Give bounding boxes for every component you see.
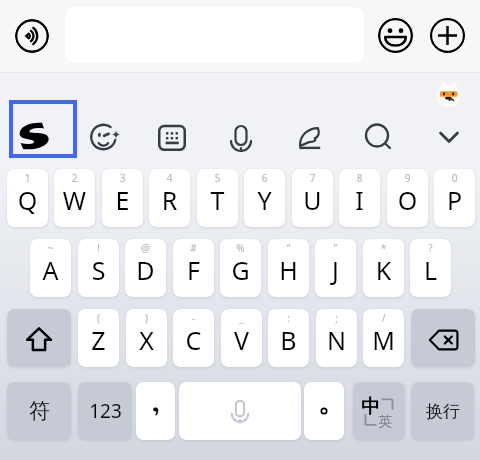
button[interactable]: Sogou (13, 104, 73, 154)
button[interactable]: ( (78, 309, 119, 367)
staticText: 中 (361, 395, 380, 419)
staticText: “ (268, 241, 309, 255)
button[interactable]: ) (126, 309, 167, 367)
staticText: Q (7, 183, 48, 217)
button[interactable]: 4 (149, 169, 190, 227)
staticText: ~ (30, 241, 71, 255)
button[interactable]: ! (78, 239, 119, 297)
button[interactable]: _ (221, 309, 262, 367)
button[interactable]: - (173, 309, 214, 367)
button[interactable]: Handwriting (287, 115, 331, 159)
button[interactable]: Chinese English toggle (353, 382, 405, 440)
button[interactable]: Shift (7, 309, 71, 367)
staticText: P (434, 183, 475, 217)
button[interactable]: 5 (197, 169, 238, 227)
button[interactable]: % (220, 239, 261, 297)
staticText: - (173, 311, 214, 325)
staticText: 123 (89, 398, 122, 424)
button[interactable]: 符 (7, 382, 71, 440)
button[interactable]: Add (430, 18, 465, 53)
staticText: V (221, 323, 262, 357)
staticText: Y (244, 183, 285, 217)
staticText: 0 (434, 171, 475, 185)
staticText: A (30, 253, 71, 287)
button[interactable]: ; (316, 309, 357, 367)
staticText: I (339, 183, 380, 217)
staticText: 符 (29, 398, 50, 424)
button[interactable]: 123 (78, 382, 132, 440)
button[interactable]: @ (125, 239, 166, 297)
staticText: @ (125, 241, 166, 255)
staticText: _ (221, 311, 262, 325)
staticText: D (125, 253, 166, 287)
button[interactable]: ” (315, 239, 356, 297)
staticText: G (220, 253, 261, 287)
staticText: ! (78, 241, 119, 255)
staticText: 6 (244, 171, 285, 185)
staticText: R (149, 183, 190, 217)
staticText: 5 (197, 171, 238, 185)
staticText: : (268, 311, 309, 325)
button[interactable]: Keyboard (150, 115, 194, 159)
staticText: S (78, 253, 119, 287)
button[interactable]: 3 (102, 169, 143, 227)
staticText: 9 (387, 171, 428, 185)
button[interactable]: ~ (30, 239, 71, 297)
button[interactable]: 7 (292, 169, 333, 227)
staticText: Z (78, 323, 119, 357)
button[interactable]: 换行 (411, 382, 474, 440)
button[interactable]: Period (304, 382, 344, 440)
staticText: J (315, 253, 356, 287)
button[interactable]: 9 (387, 169, 428, 227)
button[interactable]: Comma (136, 382, 175, 440)
staticText: 8 (339, 171, 380, 185)
button[interactable]: Collapse (427, 115, 471, 159)
staticText: ” (315, 241, 356, 255)
staticText: ) (126, 311, 167, 325)
button[interactable]: : (268, 309, 309, 367)
button[interactable]: “ (268, 239, 309, 297)
button[interactable]: / (363, 309, 404, 367)
staticText: N (316, 323, 357, 357)
staticText: % (220, 241, 261, 255)
button[interactable]: # (173, 239, 214, 297)
button[interactable]: Emoji (378, 18, 413, 53)
button[interactable]: Voice input (219, 115, 263, 159)
staticText: K (363, 253, 404, 287)
staticText: E (102, 183, 143, 217)
button[interactable]: 6 (244, 169, 285, 227)
staticText: X (126, 323, 167, 357)
button[interactable]: 8 (339, 169, 380, 227)
staticText: # (173, 241, 214, 255)
button[interactable]: Space (179, 382, 301, 440)
staticText: L (410, 253, 451, 287)
staticText: 1 (7, 171, 48, 185)
button[interactable]: Backspace (411, 309, 475, 367)
staticText: 英 (378, 413, 392, 431)
button[interactable]: * (363, 239, 404, 297)
button[interactable]: Stickers (82, 115, 126, 159)
staticText: 3 (102, 171, 143, 185)
staticText: H (268, 253, 309, 287)
staticText: U (292, 183, 333, 217)
button[interactable]: 2 (54, 169, 95, 227)
staticText: T (197, 183, 238, 217)
staticText: ; (316, 311, 357, 325)
staticText: 4 (149, 171, 190, 185)
staticText: O (387, 183, 428, 217)
staticText: * (363, 241, 404, 255)
staticText: / (363, 311, 404, 325)
staticText: C (173, 323, 214, 357)
staticText: B (268, 323, 309, 357)
staticText: 7 (292, 171, 333, 185)
staticText: W (54, 183, 95, 217)
button[interactable]: 0 (434, 169, 475, 227)
staticText: 换行 (426, 401, 460, 422)
button[interactable]: ? (410, 239, 451, 297)
button[interactable]: 1 (7, 169, 48, 227)
staticText: 2 (54, 171, 95, 185)
button[interactable]: Search (356, 115, 400, 159)
button[interactable]: Voice (15, 19, 49, 53)
staticText: ? (410, 241, 451, 255)
